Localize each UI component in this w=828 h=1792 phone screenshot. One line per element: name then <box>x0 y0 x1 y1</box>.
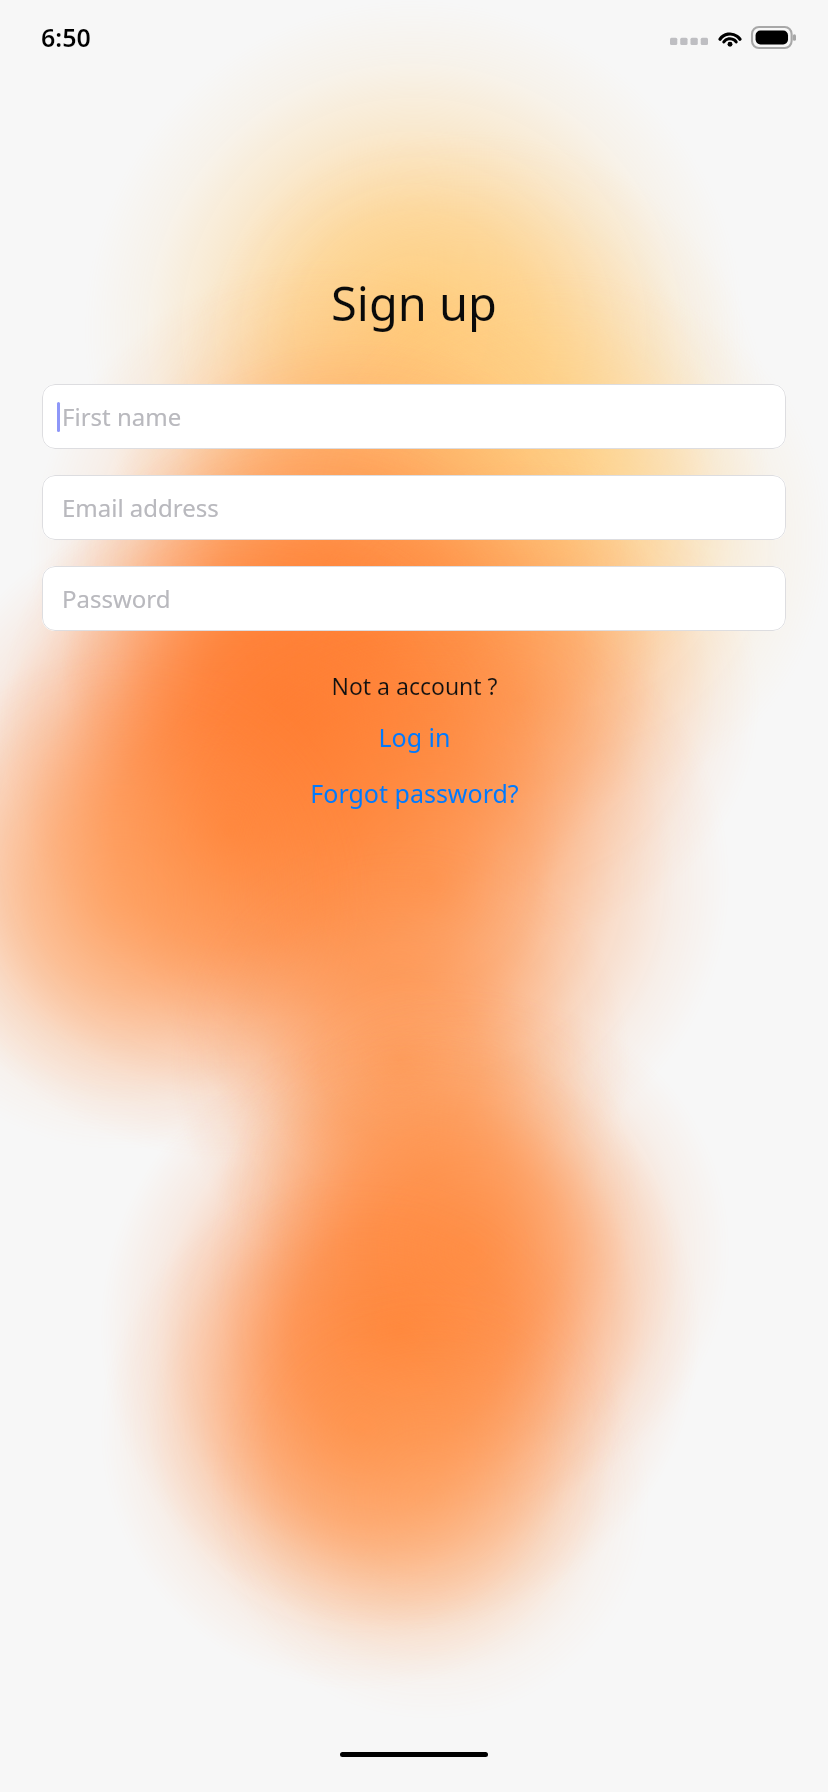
staticText: Not a account ? <box>331 670 498 701</box>
staticText: Log in <box>378 720 451 754</box>
staticText: Email address <box>62 491 219 524</box>
staticText: Forgot password? <box>310 776 519 810</box>
staticText: Sign up <box>0 271 828 335</box>
staticText: 6:50 <box>41 20 91 54</box>
button[interactable]: Not a account ? <box>0 670 828 701</box>
button[interactable]: Email address <box>42 475 786 540</box>
button[interactable]: Password <box>42 566 786 631</box>
button[interactable]: Log in <box>0 720 828 754</box>
staticText: First name <box>62 400 182 433</box>
button[interactable]: Forgot password? <box>0 776 828 810</box>
staticText: Password <box>62 582 171 615</box>
other: Home indicator <box>340 1752 488 1757</box>
button[interactable]: First name <box>42 384 786 449</box>
